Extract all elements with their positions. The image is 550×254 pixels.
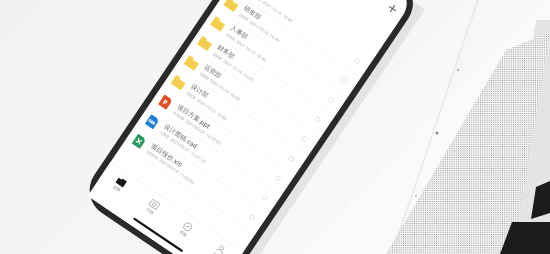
button[interactable]: 设计部 (175, 66, 295, 175)
button[interactable]: 财务部 (202, 27, 322, 136)
button[interactable]: Transfer (165, 210, 207, 248)
button[interactable]: 项目报价.xls (135, 125, 255, 234)
button[interactable]: 设计图稿.cad (149, 105, 269, 214)
button[interactable]: 项目方案.ppt (162, 86, 282, 195)
button[interactable]: Scan (132, 188, 174, 226)
button[interactable]: Profile (198, 233, 240, 254)
button[interactable]: 人事部 (215, 8, 335, 117)
button[interactable]: Files (98, 165, 140, 203)
button[interactable]: Add (375, 0, 409, 26)
button[interactable]: 运营部 (188, 47, 308, 156)
button[interactable]: 研发部 (228, 0, 348, 97)
